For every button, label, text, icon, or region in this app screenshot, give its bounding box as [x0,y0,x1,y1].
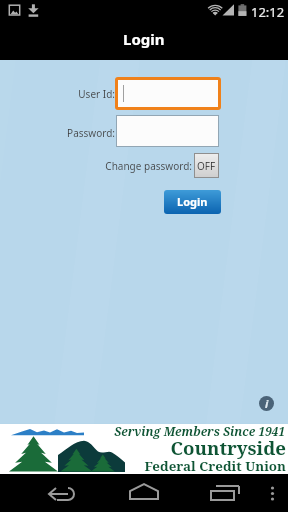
button[interactable]: Back [38,474,88,512]
staticText: Change password: [52,159,192,173]
button[interactable]: Home [119,474,169,512]
staticText: Login [123,29,165,49]
staticText: OFF [197,159,216,173]
staticText: 12:12 [251,3,285,21]
button[interactable]: Info [259,396,274,411]
staticText: Federal Credit Union [0,457,286,475]
staticText: Login [177,194,208,209]
button[interactable] [118,80,218,107]
button[interactable]: Login [164,190,221,214]
staticText: Countryside [0,435,286,460]
button[interactable]: OFF [195,154,218,177]
button[interactable]: Recent apps [200,474,250,512]
staticText: i [265,396,269,411]
button[interactable]: More options [258,474,288,512]
staticText: User Id: [15,87,115,101]
staticText: Password: [15,126,115,140]
staticText: Serving Members Since 1941 [0,423,285,439]
